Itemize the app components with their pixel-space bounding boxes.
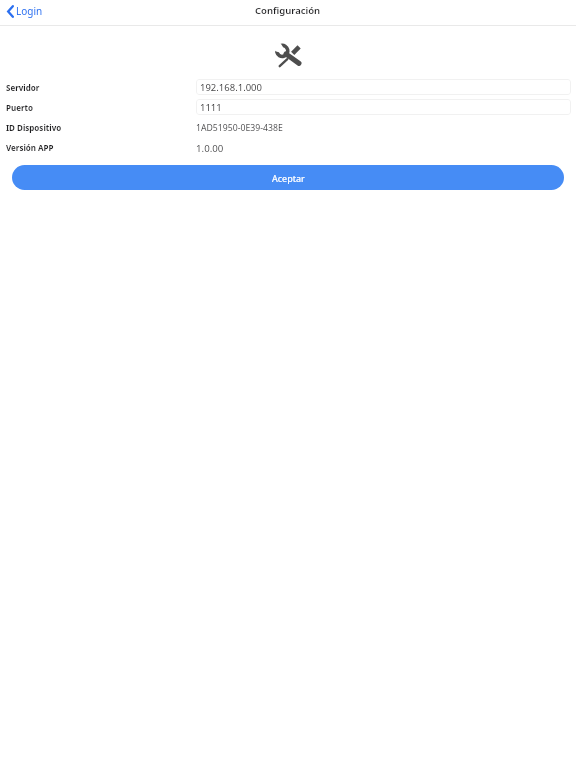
staticText: Aceptar <box>272 172 305 184</box>
other: Settings tools <box>275 44 302 68</box>
button[interactable]: 1111 <box>196 99 571 115</box>
staticText: 1AD51950-0E39-438E <box>196 122 283 134</box>
staticText: ID Dispositivo <box>6 122 62 133</box>
staticText: Puerto <box>6 102 33 113</box>
button[interactable]: Aceptar <box>12 165 564 190</box>
staticText: 192.168.1.000 <box>200 81 262 94</box>
staticText: Login <box>16 4 43 18</box>
staticText: Configuración <box>255 4 321 17</box>
button[interactable]: 192.168.1.000 <box>196 79 571 95</box>
button[interactable]: Back to Login <box>0 1 51 21</box>
staticText: Servidor <box>6 82 40 93</box>
staticText: 1111 <box>200 101 222 114</box>
staticText: 1.0.00 <box>196 142 224 155</box>
staticText: Versión APP <box>6 142 54 153</box>
